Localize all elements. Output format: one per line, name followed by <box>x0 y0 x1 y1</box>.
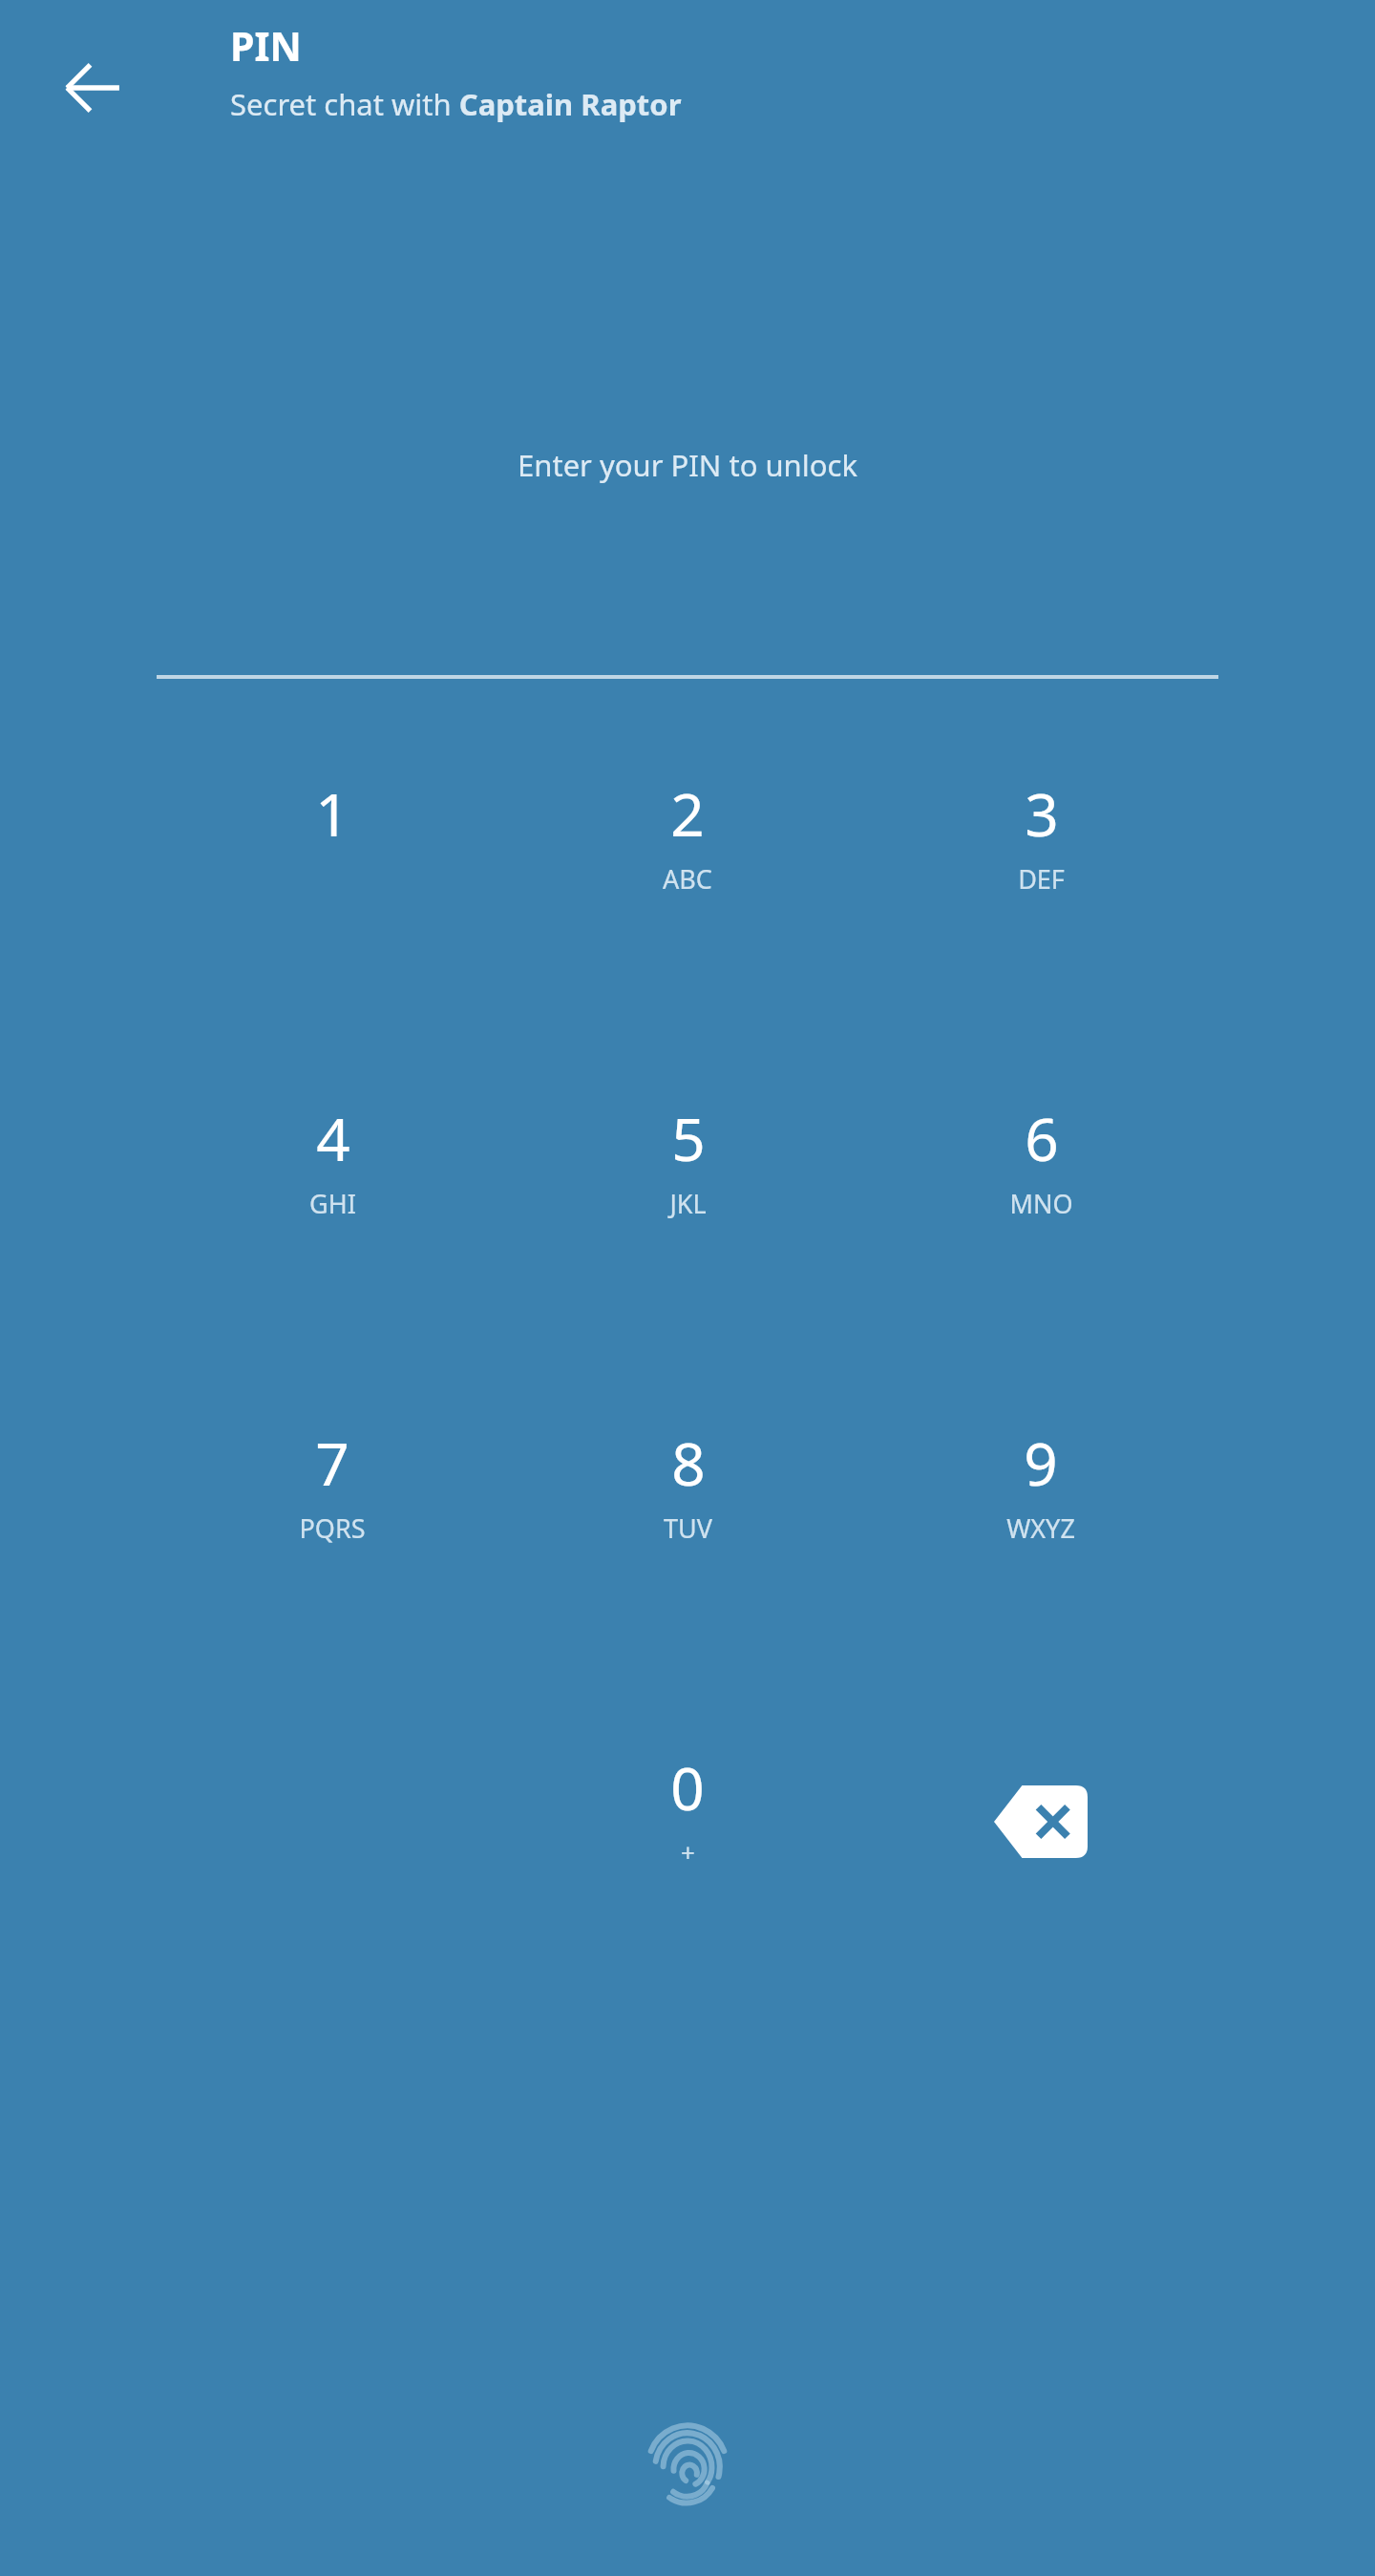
staticText: GHI <box>309 1186 356 1221</box>
button[interactable]: 2 <box>510 770 865 966</box>
button[interactable]: 0 <box>510 1743 865 1940</box>
staticText: 7 <box>315 1423 349 1503</box>
button[interactable]: 3 <box>863 770 1218 966</box>
staticText: JKL <box>669 1186 707 1221</box>
staticText: 3 <box>1025 773 1059 854</box>
button[interactable]: 4 <box>155 1094 510 1291</box>
button[interactable]: 6 <box>863 1094 1218 1291</box>
staticText: 4 <box>316 1098 350 1178</box>
staticText: PIN <box>230 19 302 73</box>
staticText: 2 <box>670 773 705 854</box>
staticText: 5 <box>671 1098 706 1178</box>
staticText: PQRS <box>299 1510 366 1546</box>
button[interactable]: Backspace <box>926 1749 1155 1940</box>
staticText: MNO <box>1009 1186 1073 1221</box>
button[interactable]: 7 <box>155 1419 510 1615</box>
staticText: ABC <box>663 861 712 897</box>
staticText: Enter your PIN to unlock <box>0 445 1375 485</box>
button[interactable]: 8 <box>510 1419 865 1615</box>
staticText: 6 <box>1025 1098 1059 1178</box>
staticText: Secret chat with Captain Raptor <box>230 84 682 124</box>
staticText: 1 <box>315 773 349 854</box>
staticText: WXYZ <box>1006 1510 1075 1546</box>
button[interactable]: Unlock with fingerprint <box>626 2404 749 2526</box>
button[interactable]: Back <box>35 31 150 145</box>
staticText: TUV <box>664 1510 712 1546</box>
staticText: 0 <box>670 1747 705 1827</box>
staticText: DEF <box>1018 861 1065 897</box>
staticText: + <box>681 1835 695 1869</box>
button[interactable]: 5 <box>510 1094 865 1291</box>
button[interactable]: 1 <box>155 770 510 966</box>
staticText: 8 <box>671 1423 706 1503</box>
staticText: 9 <box>1024 1423 1058 1503</box>
button[interactable]: 9 <box>863 1419 1218 1615</box>
